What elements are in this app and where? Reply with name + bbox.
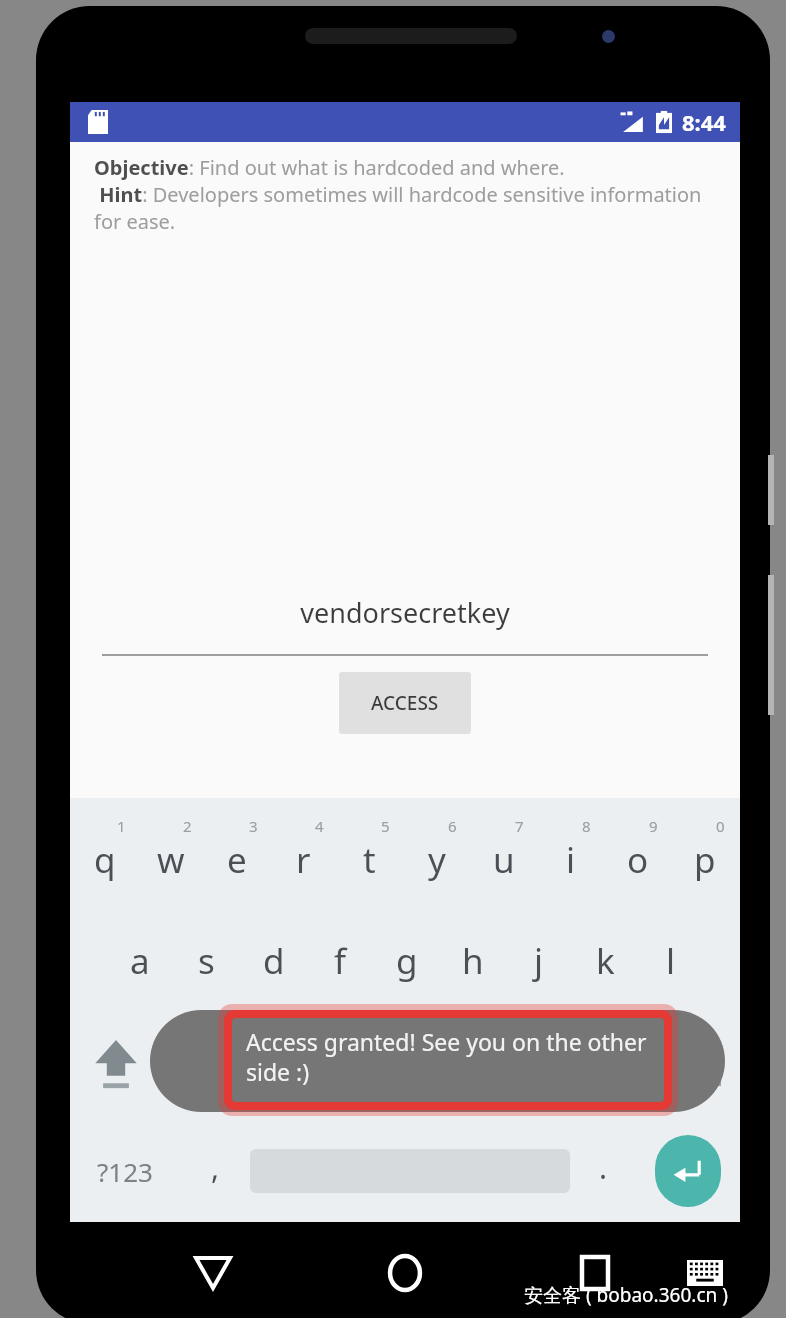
button[interactable]: 6 [403, 798, 470, 910]
staticText: a [130, 937, 150, 985]
staticText: n [534, 1042, 556, 1090]
staticText: x [258, 1042, 277, 1090]
staticText: 2 [183, 816, 192, 836]
staticText: Objective: Find out what is hardcoded an… [94, 154, 722, 235]
button[interactable]: 2 [138, 798, 204, 910]
staticText: e [227, 836, 247, 884]
staticText: w [157, 836, 185, 884]
staticText: y [428, 836, 446, 884]
button[interactable]: Home [370, 1238, 440, 1308]
button[interactable]: Enter [655, 1135, 721, 1207]
staticText: b [465, 1042, 487, 1090]
button[interactable]: ?123 [70, 1120, 180, 1222]
button[interactable]: m [579, 1012, 648, 1120]
staticText: l [666, 937, 676, 985]
staticText: 6 [448, 816, 457, 836]
button[interactable]: c [302, 1012, 372, 1120]
button[interactable]: f [307, 910, 374, 1012]
button[interactable]: , [180, 1120, 250, 1222]
staticText: 9 [649, 816, 658, 836]
button[interactable]: 3 [204, 798, 270, 910]
button[interactable]: g [374, 910, 440, 1012]
button[interactable]: Back [178, 1238, 248, 1308]
staticText: r [296, 836, 311, 884]
button[interactable]: 5 [336, 798, 403, 910]
staticText: j [534, 937, 544, 985]
button[interactable]: 0 [671, 798, 738, 910]
staticText: vendorsecretkey [300, 594, 510, 631]
staticText: 7 [515, 816, 524, 836]
staticText: o [627, 836, 649, 884]
staticText: g [396, 937, 418, 985]
button[interactable]: n [510, 1012, 579, 1120]
button[interactable]: 9 [604, 798, 671, 910]
button[interactable]: . [570, 1120, 636, 1222]
staticText: 5 [381, 816, 390, 836]
button[interactable]: h [440, 910, 506, 1012]
button[interactable]: k [572, 910, 638, 1012]
button[interactable]: z [162, 1012, 232, 1120]
staticText: 安全客 ( bobao.360.cn ) [524, 1282, 728, 1308]
button[interactable]: 8 [537, 798, 604, 910]
button[interactable]: l [638, 910, 704, 1012]
staticText: , [211, 1147, 220, 1188]
staticText: ACCESS [371, 690, 439, 716]
button[interactable]: Backspace [648, 1012, 740, 1120]
staticText: 3 [249, 816, 258, 836]
button[interactable]: s [173, 910, 240, 1012]
button[interactable]: vendorsecretkey [70, 594, 740, 656]
staticText: 0 [716, 816, 725, 836]
staticText: 4 [315, 816, 324, 836]
button[interactable]: Recents [560, 1238, 630, 1308]
staticText: u [493, 836, 515, 884]
staticText: v [398, 1042, 416, 1090]
staticText: k [596, 937, 615, 985]
staticText: m [597, 1042, 630, 1090]
button[interactable]: 7 [470, 798, 537, 910]
staticText: c [329, 1042, 346, 1090]
staticText: p [694, 836, 716, 884]
staticText: 8 [582, 816, 591, 836]
staticText: t [363, 836, 376, 884]
staticText: f [334, 937, 347, 985]
button[interactable]: 4 [270, 798, 336, 910]
button[interactable]: Switch keyboard [670, 1238, 740, 1308]
staticText: ?123 [97, 1154, 153, 1189]
staticText: s [198, 937, 215, 985]
button[interactable]: v [372, 1012, 441, 1120]
staticText: . [599, 1147, 608, 1188]
button[interactable]: b [441, 1012, 510, 1120]
staticText: i [566, 836, 576, 884]
button[interactable]: a [106, 910, 173, 1012]
button[interactable]: Shift [70, 1012, 162, 1120]
staticText: q [94, 836, 116, 884]
button[interactable]: 1 [72, 798, 138, 910]
staticText: 8:44 [682, 107, 726, 137]
button[interactable]: ACCESS [339, 672, 471, 734]
button[interactable]: j [506, 910, 572, 1012]
button[interactable]: x [232, 1012, 302, 1120]
staticText: 1 [117, 816, 126, 836]
staticText: h [462, 937, 484, 985]
staticText: d [263, 937, 285, 985]
button[interactable]: d [240, 910, 307, 1012]
staticText: Access granted! See you on the other sid… [246, 1026, 648, 1088]
